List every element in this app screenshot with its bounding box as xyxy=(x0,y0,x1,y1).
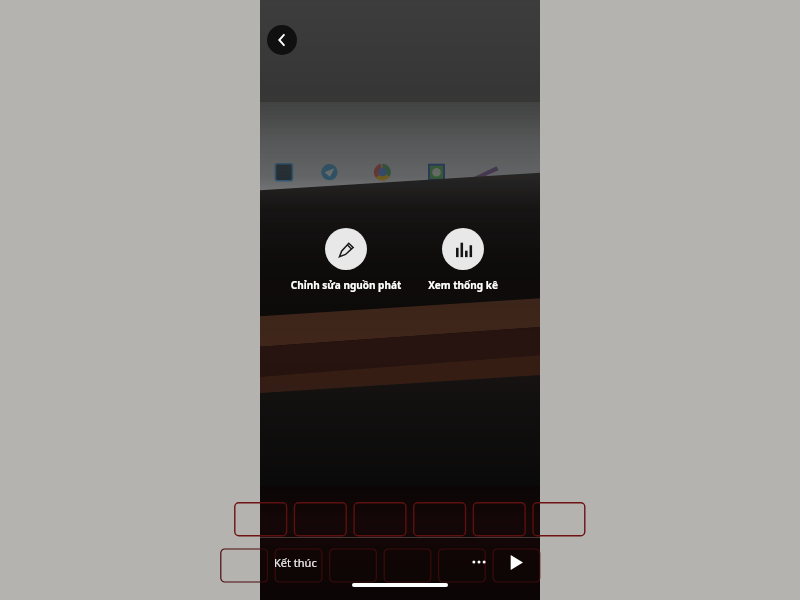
button[interactable]: Play xyxy=(502,549,528,575)
button[interactable]: More options xyxy=(466,549,492,575)
staticText: Kết thúc xyxy=(274,555,317,570)
button[interactable]: Xem thống kê xyxy=(413,228,513,292)
button[interactable]: Kết thúc xyxy=(272,551,319,574)
staticText: Chỉnh sửa nguồn phát xyxy=(287,278,405,292)
button[interactable]: Back xyxy=(267,25,297,55)
staticText: Xem thống kê xyxy=(413,278,513,292)
button[interactable]: Chỉnh sửa nguồn phát xyxy=(287,228,405,292)
